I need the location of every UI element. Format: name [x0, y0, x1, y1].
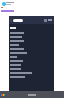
button[interactable]: [9, 48, 54, 50]
button[interactable]: [9, 64, 54, 66]
button[interactable]: [9, 36, 54, 38]
button[interactable]: [9, 52, 54, 54]
button[interactable]: [9, 32, 54, 34]
button[interactable]: [9, 72, 54, 74]
button[interactable]: [9, 76, 54, 78]
button[interactable]: [9, 56, 54, 58]
button[interactable]: [9, 40, 54, 42]
button[interactable]: [13, 19, 23, 22]
button[interactable]: [9, 60, 54, 62]
button[interactable]: [9, 68, 54, 70]
button[interactable]: [9, 44, 54, 46]
